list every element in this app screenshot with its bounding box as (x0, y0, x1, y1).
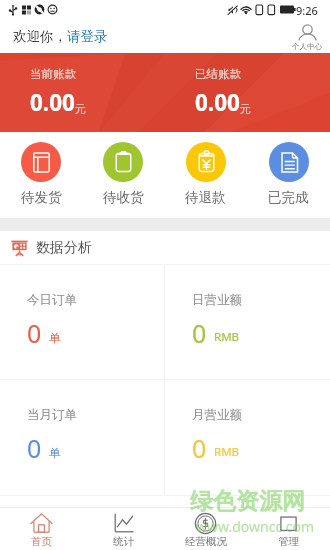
staticText: 今日订单 (27, 292, 77, 308)
staticText: 经营概况 (185, 535, 227, 548)
staticText: 日营业额 (192, 292, 242, 308)
staticText: 单 (49, 446, 61, 460)
staticText: 元 (75, 102, 86, 116)
staticText: 单 (49, 331, 61, 345)
staticText: 请登录 (67, 28, 108, 45)
staticText: 首页 (31, 535, 52, 548)
staticText: www.downcc.com (196, 517, 315, 536)
staticText: 已结账款 (195, 67, 241, 81)
staticText: RMB (214, 329, 240, 345)
button[interactable]: 已完成 (247, 132, 330, 218)
staticText: 绿色资源网 (190, 487, 305, 516)
staticText: RMB (214, 444, 240, 460)
staticText: 0 (192, 431, 207, 465)
button[interactable]: 管理 (247, 508, 330, 550)
button[interactable]: 月营业额 (165, 380, 330, 495)
button[interactable]: 日营业额 (165, 265, 330, 379)
staticText: 0 (27, 316, 42, 350)
staticText: 当月订单 (27, 407, 77, 423)
staticText: 月营业额 (192, 407, 242, 423)
button[interactable]: 今日订单 (0, 265, 164, 379)
button[interactable]: 欢迎你， (13, 28, 108, 45)
staticText: 待收货 (103, 189, 144, 206)
button[interactable]: 当月订单 (0, 380, 164, 495)
button[interactable]: 统计 (82, 508, 164, 550)
staticText: 待退款 (185, 189, 226, 206)
staticText: 统计 (113, 535, 134, 548)
button[interactable]: 个人中心 (292, 24, 322, 51)
staticText: 0.00 (195, 87, 240, 118)
staticText: 0 (27, 431, 42, 465)
staticText: 数据分析 (36, 239, 92, 257)
staticText: 元 (240, 102, 251, 116)
staticText: 0 (192, 316, 207, 350)
button[interactable]: 待发货 (0, 132, 82, 218)
staticText: 待发货 (21, 189, 62, 206)
button[interactable]: 待收货 (82, 132, 164, 218)
button[interactable]: 待退款 (164, 132, 247, 218)
staticText: 0.00 (30, 87, 75, 118)
staticText: 欢迎你， (13, 28, 67, 45)
staticText: 9:26 (296, 3, 318, 18)
staticText: 当前账款 (30, 67, 76, 81)
staticText: 个人中心 (292, 42, 322, 51)
staticText: 管理 (278, 535, 299, 548)
staticText: 已完成 (268, 189, 309, 206)
button[interactable]: 首页 (0, 508, 82, 550)
button[interactable]: 经营概况 (164, 508, 247, 550)
